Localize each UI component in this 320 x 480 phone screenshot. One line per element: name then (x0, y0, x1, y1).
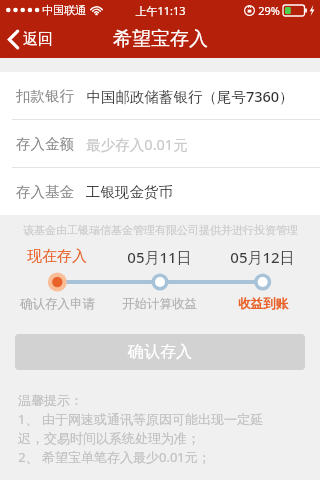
staticText: 存入基金 (16, 183, 74, 201)
staticText: 29% (258, 3, 280, 18)
staticText: 存入金额 (16, 135, 74, 153)
staticText: 2、 希望宝单笔存入最少0.01元； (18, 448, 211, 466)
staticText: 工银现金货币 (86, 183, 173, 201)
staticText: 中国邮政储蓄银行（尾号7360） (86, 86, 294, 106)
staticText: 收益到账 (238, 296, 288, 312)
staticText: 扣款银行 (16, 87, 74, 105)
staticText: 返回 (23, 30, 53, 49)
button[interactable]: 返回 (0, 26, 63, 53)
staticText: 温馨提示： (18, 392, 83, 408)
staticText: 最少存入0.01元 (86, 134, 188, 154)
staticText: 该基金由工银瑞信基金管理有限公司提供并进行投资管理 (23, 223, 298, 237)
staticText: 中国联通 (42, 3, 86, 17)
staticText: 上午11:13 (135, 3, 186, 18)
staticText: 05月12日 (230, 247, 295, 267)
staticText: 希望宝存入 (113, 27, 208, 51)
staticText: 确认存入 (128, 342, 192, 362)
button[interactable]: 确认存入 (15, 334, 305, 370)
staticText: 迟，交易时间以系统处理为准； (18, 430, 200, 446)
staticText: 开始计算收益 (122, 296, 197, 312)
button[interactable]: 扣款银行 (0, 72, 320, 119)
button[interactable]: 存入金额 (0, 120, 320, 167)
staticText: 确认存入申请 (20, 296, 95, 312)
staticText: 现在存入 (27, 247, 87, 266)
staticText: 1、 由于网速或通讯等原因可能出现一定延 (18, 410, 263, 428)
staticText: 05月11日 (127, 247, 192, 267)
button[interactable]: 存入基金 (0, 168, 320, 215)
